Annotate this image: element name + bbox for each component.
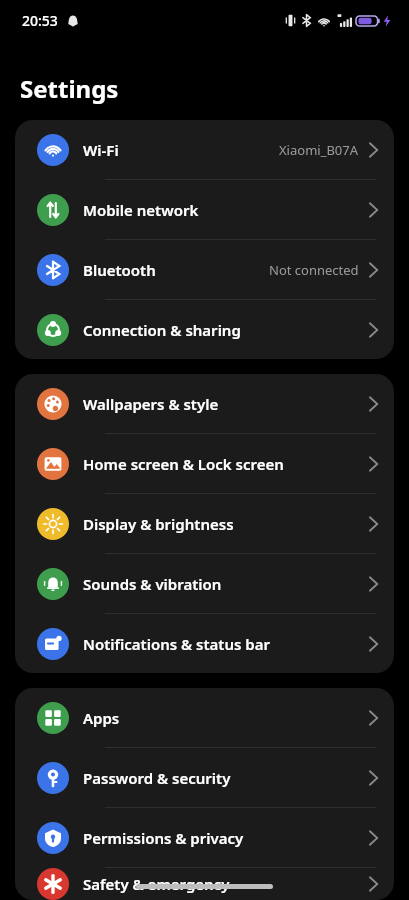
button[interactable]: Notifications & status bar <box>15 614 394 673</box>
staticText: Safety & emergency <box>83 874 230 894</box>
staticText: Permissions & privacy <box>83 828 244 848</box>
button[interactable]: Apps <box>15 688 394 747</box>
staticText: Wallpapers & style <box>83 394 219 414</box>
other: Open <box>369 262 378 278</box>
other: Open <box>369 142 378 158</box>
other: Open <box>369 830 378 846</box>
other: Open <box>369 202 378 218</box>
other: Open <box>369 876 378 892</box>
other: Open <box>369 322 378 338</box>
staticText: Password & security <box>83 768 231 788</box>
other: Open <box>369 636 378 652</box>
button[interactable]: Wallpapers & style <box>15 374 394 433</box>
staticText: Apps <box>83 708 120 728</box>
staticText: Sounds & vibration <box>83 574 222 594</box>
staticText: Wi-Fi <box>83 140 119 160</box>
other: Open <box>369 710 378 726</box>
other: Open <box>369 516 378 532</box>
staticText: Home screen & Lock screen <box>83 454 284 474</box>
button[interactable]: Bluetooth <box>15 240 394 299</box>
staticText: 20:53 <box>22 11 58 30</box>
staticText: Notifications & status bar <box>83 634 270 654</box>
button[interactable]: Wi-Fi <box>15 120 394 179</box>
button[interactable]: Mobile network <box>15 180 394 239</box>
staticText: Xiaomi_B07A <box>279 141 359 159</box>
other: Open <box>369 396 378 412</box>
button[interactable]: Display & brightness <box>15 494 394 553</box>
button[interactable]: Home screen & Lock screen <box>15 434 394 493</box>
other: Open <box>369 770 378 786</box>
button[interactable]: Sounds & vibration <box>15 554 394 613</box>
staticText: Mobile network <box>83 200 199 220</box>
other: Open <box>369 456 378 472</box>
button[interactable]: Permissions & privacy <box>15 808 394 867</box>
staticText: Bluetooth <box>83 260 156 280</box>
staticText: Connection & sharing <box>83 320 241 340</box>
staticText: Settings <box>20 72 119 105</box>
button[interactable]: Connection & sharing <box>15 300 394 359</box>
button[interactable]: Password & security <box>15 748 394 807</box>
button[interactable]: Safety & emergency <box>15 868 394 900</box>
other: Open <box>369 576 378 592</box>
staticText: Not connected <box>269 261 359 279</box>
staticText: Display & brightness <box>83 514 234 534</box>
